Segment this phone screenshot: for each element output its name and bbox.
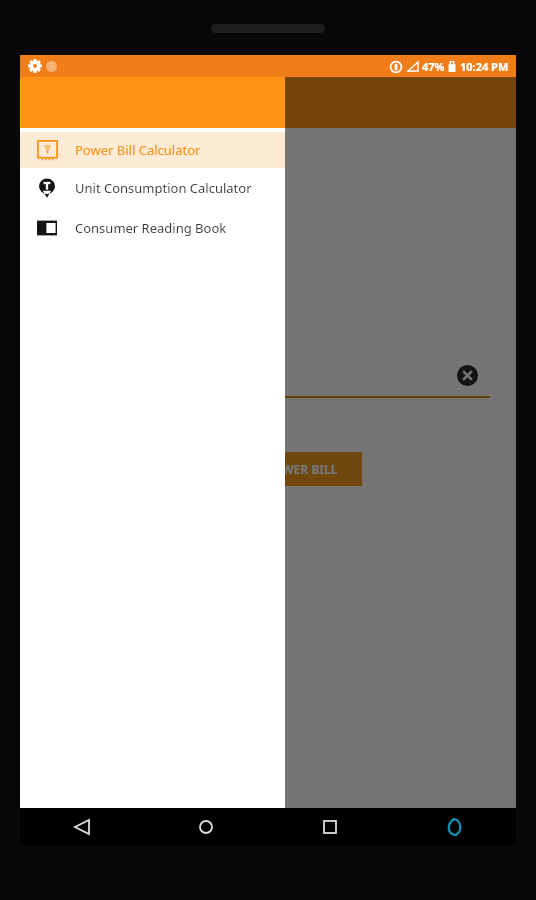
button[interactable]: Clear text — [457, 365, 478, 386]
button[interactable]: Home — [144, 808, 268, 845]
button[interactable]: Assistant — [392, 808, 516, 845]
button[interactable]: Power Bill Calculator — [20, 132, 285, 168]
staticText: Power Bill Calculator — [75, 141, 201, 159]
button[interactable]: Back — [20, 808, 144, 845]
staticText: Consumer Reading Book — [75, 219, 227, 237]
button[interactable]: Consumer Reading Book — [20, 208, 285, 248]
staticText: CALCULATE POWER BILL — [195, 461, 338, 477]
staticText: 10:24 PM — [460, 59, 509, 74]
button[interactable]: Recents — [268, 808, 392, 845]
staticText: 47% — [422, 59, 445, 74]
button[interactable]: CALCULATE POWER BILL — [170, 452, 362, 486]
staticText: Unit Consumption Calculator — [75, 179, 252, 197]
button[interactable]: Unit Consumption Calculator — [20, 168, 285, 208]
